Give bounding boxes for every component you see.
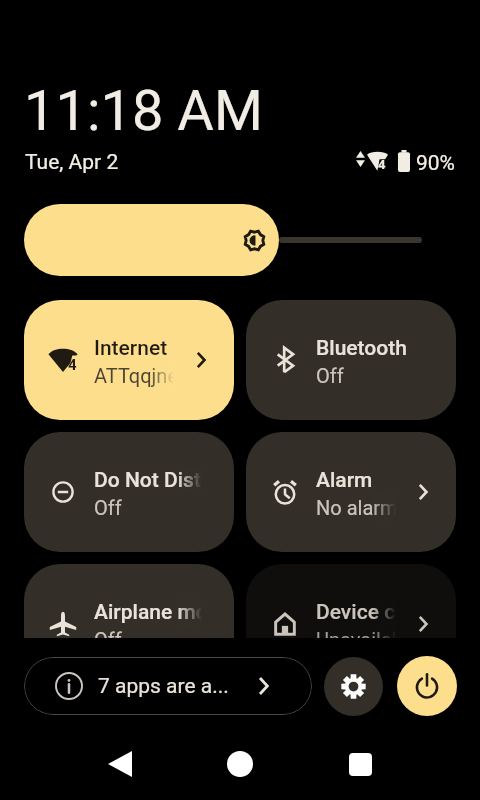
staticText: 90% xyxy=(416,151,455,176)
staticText: Internet xyxy=(94,336,168,361)
button[interactable]: Device controls xyxy=(246,564,456,684)
button[interactable]: Airplane mode xyxy=(24,564,234,684)
staticText: No alarm set xyxy=(316,496,396,519)
staticText: Device controls xyxy=(316,600,396,625)
staticText: Bluetooth xyxy=(316,336,407,361)
staticText: Off xyxy=(94,628,122,651)
staticText: 4 xyxy=(68,356,77,374)
staticText: Airplane mode xyxy=(94,600,202,625)
button[interactable]: Back xyxy=(96,740,144,788)
staticText: 7 apps are a... xyxy=(98,674,229,699)
staticText: Unavailable xyxy=(316,628,396,651)
button[interactable]: Settings xyxy=(324,657,383,716)
button[interactable]: Alarm xyxy=(246,432,456,552)
staticText: 11:18 AM xyxy=(24,78,263,144)
staticText: Off xyxy=(94,496,122,519)
button[interactable]: Bluetooth xyxy=(246,300,456,420)
button[interactable]: Home xyxy=(216,740,264,788)
button[interactable]: 4 xyxy=(24,300,234,420)
staticText: Do Not Disturb xyxy=(94,468,202,493)
staticText: 4 xyxy=(378,157,386,172)
staticText: Off xyxy=(316,364,344,387)
staticText: Tue, Apr 2 xyxy=(25,150,119,175)
button[interactable]: Power xyxy=(397,656,457,716)
button[interactable]: Brightness xyxy=(24,204,422,276)
button[interactable]: Do Not Disturb xyxy=(24,432,234,552)
staticText: ATTqqjnetwork xyxy=(94,364,174,387)
staticText: Alarm xyxy=(316,468,373,493)
button[interactable]: Recents xyxy=(336,740,384,788)
button[interactable]: 7 apps are a... xyxy=(24,657,312,715)
